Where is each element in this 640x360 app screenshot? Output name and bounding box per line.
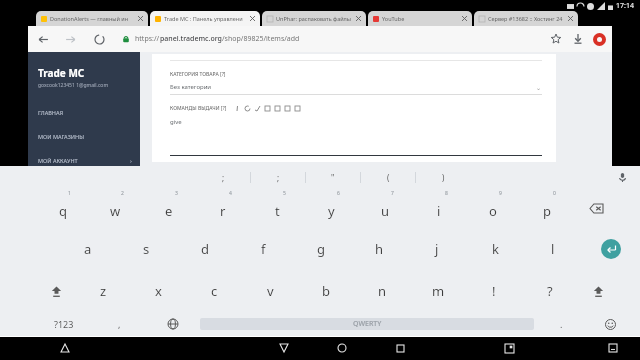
staticText: goxcook123451 1@gmail.com: [38, 82, 109, 89]
button[interactable]: (: [361, 166, 415, 188]
staticText: YouTube: [382, 15, 405, 22]
button[interactable]: b: [298, 270, 354, 312]
button[interactable]: Trade MC : Панель управлени: [155, 11, 255, 26]
button[interactable]: Screenshot: [496, 336, 522, 360]
button[interactable]: YouTube: [373, 11, 467, 26]
staticText: Сервер #13682 :: Хостинг 24: [488, 15, 563, 22]
button[interactable]: k: [466, 228, 524, 270]
button[interactable]: Editor tool 5: [273, 104, 281, 112]
button[interactable]: ": [306, 166, 360, 188]
staticText: 3: [175, 190, 178, 197]
button[interactable]: Bookmark: [551, 34, 561, 44]
button[interactable]: d: [176, 228, 234, 270]
button[interactable]: 6: [304, 188, 358, 228]
staticText: f: [261, 240, 266, 258]
button[interactable]: Close tab: [250, 16, 255, 21]
button[interactable]: ?123: [36, 312, 92, 336]
button[interactable]: g: [292, 228, 350, 270]
button[interactable]: Backspace: [574, 188, 618, 228]
button[interactable]: ): [416, 166, 470, 188]
button[interactable]: 2: [89, 188, 142, 228]
button[interactable]: v: [242, 270, 298, 312]
staticText: ?: [547, 282, 553, 300]
staticText: 1: [68, 190, 71, 197]
button[interactable]: Recent apps: [387, 336, 413, 360]
button[interactable]: Downloads: [573, 34, 583, 44]
button[interactable]: 5: [250, 188, 304, 228]
button[interactable]: Emoji: [588, 312, 632, 336]
staticText: .: [560, 318, 563, 330]
staticText: ГЛАВНАЯ: [38, 109, 64, 116]
button[interactable]: j: [408, 228, 466, 270]
button[interactable]: Back: [38, 34, 49, 45]
button[interactable]: ,: [92, 312, 146, 336]
button[interactable]: ГЛАВНАЯ: [38, 107, 140, 118]
staticText: p: [543, 202, 551, 220]
staticText: r: [220, 202, 226, 220]
staticText: give: [170, 118, 182, 126]
button[interactable]: Editor tool 1: [233, 104, 241, 112]
button[interactable]: Shift: [578, 270, 618, 312]
button[interactable]: ;: [196, 166, 250, 188]
button[interactable]: l: [524, 228, 582, 270]
button[interactable]: Editor tool 3: [253, 104, 261, 112]
button[interactable]: 3: [142, 188, 196, 228]
button[interactable]: Close tab: [568, 16, 573, 21]
button[interactable]: Profile: [593, 33, 606, 46]
staticText: Без категории: [170, 83, 212, 91]
button[interactable]: Shift: [36, 270, 76, 312]
button[interactable]: ?: [522, 270, 578, 312]
button[interactable]: h: [350, 228, 408, 270]
staticText: UnPhar: распаковать файлы: [276, 15, 352, 22]
button[interactable]: Editor tool 6: [283, 104, 291, 112]
button[interactable]: Enter: [582, 228, 640, 270]
button[interactable]: Close tab: [462, 16, 467, 21]
button[interactable]: Reload: [92, 32, 106, 46]
staticText: d: [201, 240, 209, 258]
staticText: n: [378, 282, 387, 300]
button[interactable]: Editor tool 7: [293, 104, 301, 112]
button[interactable]: Change language: [146, 312, 200, 336]
staticText: q: [59, 202, 67, 220]
button[interactable]: c: [186, 270, 242, 312]
button[interactable]: m: [410, 270, 466, 312]
button[interactable]: a: [58, 228, 117, 270]
button[interactable]: UnPhar: распаковать файлы: [267, 11, 361, 26]
button[interactable]: !: [466, 270, 522, 312]
button[interactable]: ;: [251, 166, 305, 188]
button[interactable]: Voice input: [612, 167, 632, 187]
button[interactable]: DonationAlerts — главный ин: [41, 11, 143, 26]
button[interactable]: 7: [358, 188, 412, 228]
button[interactable]: https://: [135, 34, 551, 44]
button[interactable]: 8: [412, 188, 466, 228]
button[interactable]: n: [354, 270, 410, 312]
button[interactable]: Home: [329, 336, 355, 360]
button[interactable]: 9: [466, 188, 520, 228]
button[interactable]: Expand: [52, 336, 78, 360]
button[interactable]: Без категории: [170, 83, 542, 91]
button[interactable]: f: [234, 228, 292, 270]
button[interactable]: x: [131, 270, 186, 312]
button[interactable]: s: [117, 228, 176, 270]
button[interactable]: Сервер #13682 :: Хостинг 24: [479, 11, 573, 26]
staticText: QWERTY: [353, 319, 382, 329]
button[interactable]: 0: [520, 188, 574, 228]
button[interactable]: Editor tool 4: [263, 104, 271, 112]
staticText: ⌄: [536, 84, 542, 91]
staticText: z: [100, 282, 107, 300]
staticText: DonationAlerts — главный ин: [50, 15, 129, 22]
button[interactable]: Forward: [65, 34, 76, 45]
button[interactable]: QWERTY: [200, 318, 534, 330]
button[interactable]: Keyboard: [600, 336, 626, 360]
button[interactable]: Close tab: [356, 16, 361, 21]
button[interactable]: Close tab: [138, 16, 143, 21]
button[interactable]: Back: [271, 336, 297, 360]
button[interactable]: МОЙ АККАУНТ: [38, 155, 140, 166]
button[interactable]: z: [76, 270, 131, 312]
button[interactable]: 1: [36, 188, 89, 228]
button[interactable]: Editor tool 2: [243, 104, 251, 112]
button[interactable]: 4: [196, 188, 250, 228]
button[interactable]: МОИ МАГАЗИНЫ: [38, 131, 140, 142]
staticText: ›: [130, 157, 132, 165]
